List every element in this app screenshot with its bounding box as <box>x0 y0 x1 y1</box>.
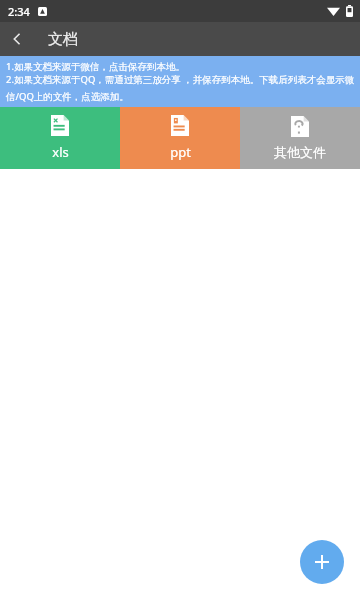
button[interactable]: Add <box>300 540 344 584</box>
button[interactable]: xls <box>0 107 120 169</box>
staticText: 2.如果文档来源于QQ，需通过第三放分享 ，并保存到本地。下载后列表才会显示微信… <box>6 73 355 102</box>
staticText: 1.如果文档来源于微信，点击保存到本地。 <box>6 60 185 73</box>
button[interactable]: ppt <box>120 107 240 169</box>
button[interactable]: 其他文件 <box>240 107 360 169</box>
staticText: 其他文件 <box>274 144 326 160</box>
staticText: 文档 <box>48 30 78 49</box>
staticText: ppt <box>170 143 191 161</box>
staticText: xls <box>52 143 69 161</box>
staticText: 2:34 <box>8 4 30 19</box>
button[interactable]: Back <box>0 22 34 56</box>
